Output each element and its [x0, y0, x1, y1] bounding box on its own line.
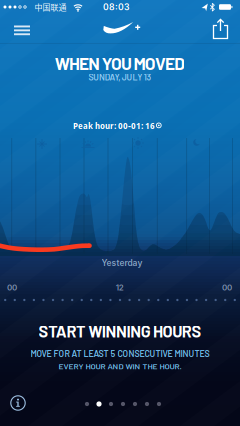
staticText: 00 — [7, 283, 17, 292]
staticText: WHEN YOU MOVED — [55, 53, 185, 73]
staticText: EVERY HOUR AND WIN THE HOUR. — [58, 361, 181, 371]
staticText: MOVE FOR AT LEAST 5 CONSECUTIVE MINUTES — [30, 348, 209, 359]
button[interactable]: Menu — [0, 15, 44, 45]
staticText: START WINNING HOURS — [39, 321, 201, 341]
staticText: 12 — [116, 283, 124, 292]
staticText: Peak hour: 00-01: 16 — [73, 119, 155, 132]
staticText: 00 — [222, 283, 232, 292]
staticText: 中国联通 — [34, 1, 66, 13]
button[interactable]: Share — [202, 16, 238, 42]
button[interactable]: Info — [3, 388, 33, 418]
staticText: SUNDAY, JULY 13 — [88, 72, 152, 82]
button[interactable]: Page 2 of 7 — [79, 397, 167, 411]
staticText: 08:03 — [103, 2, 130, 12]
staticText: Yesterday — [101, 258, 142, 268]
